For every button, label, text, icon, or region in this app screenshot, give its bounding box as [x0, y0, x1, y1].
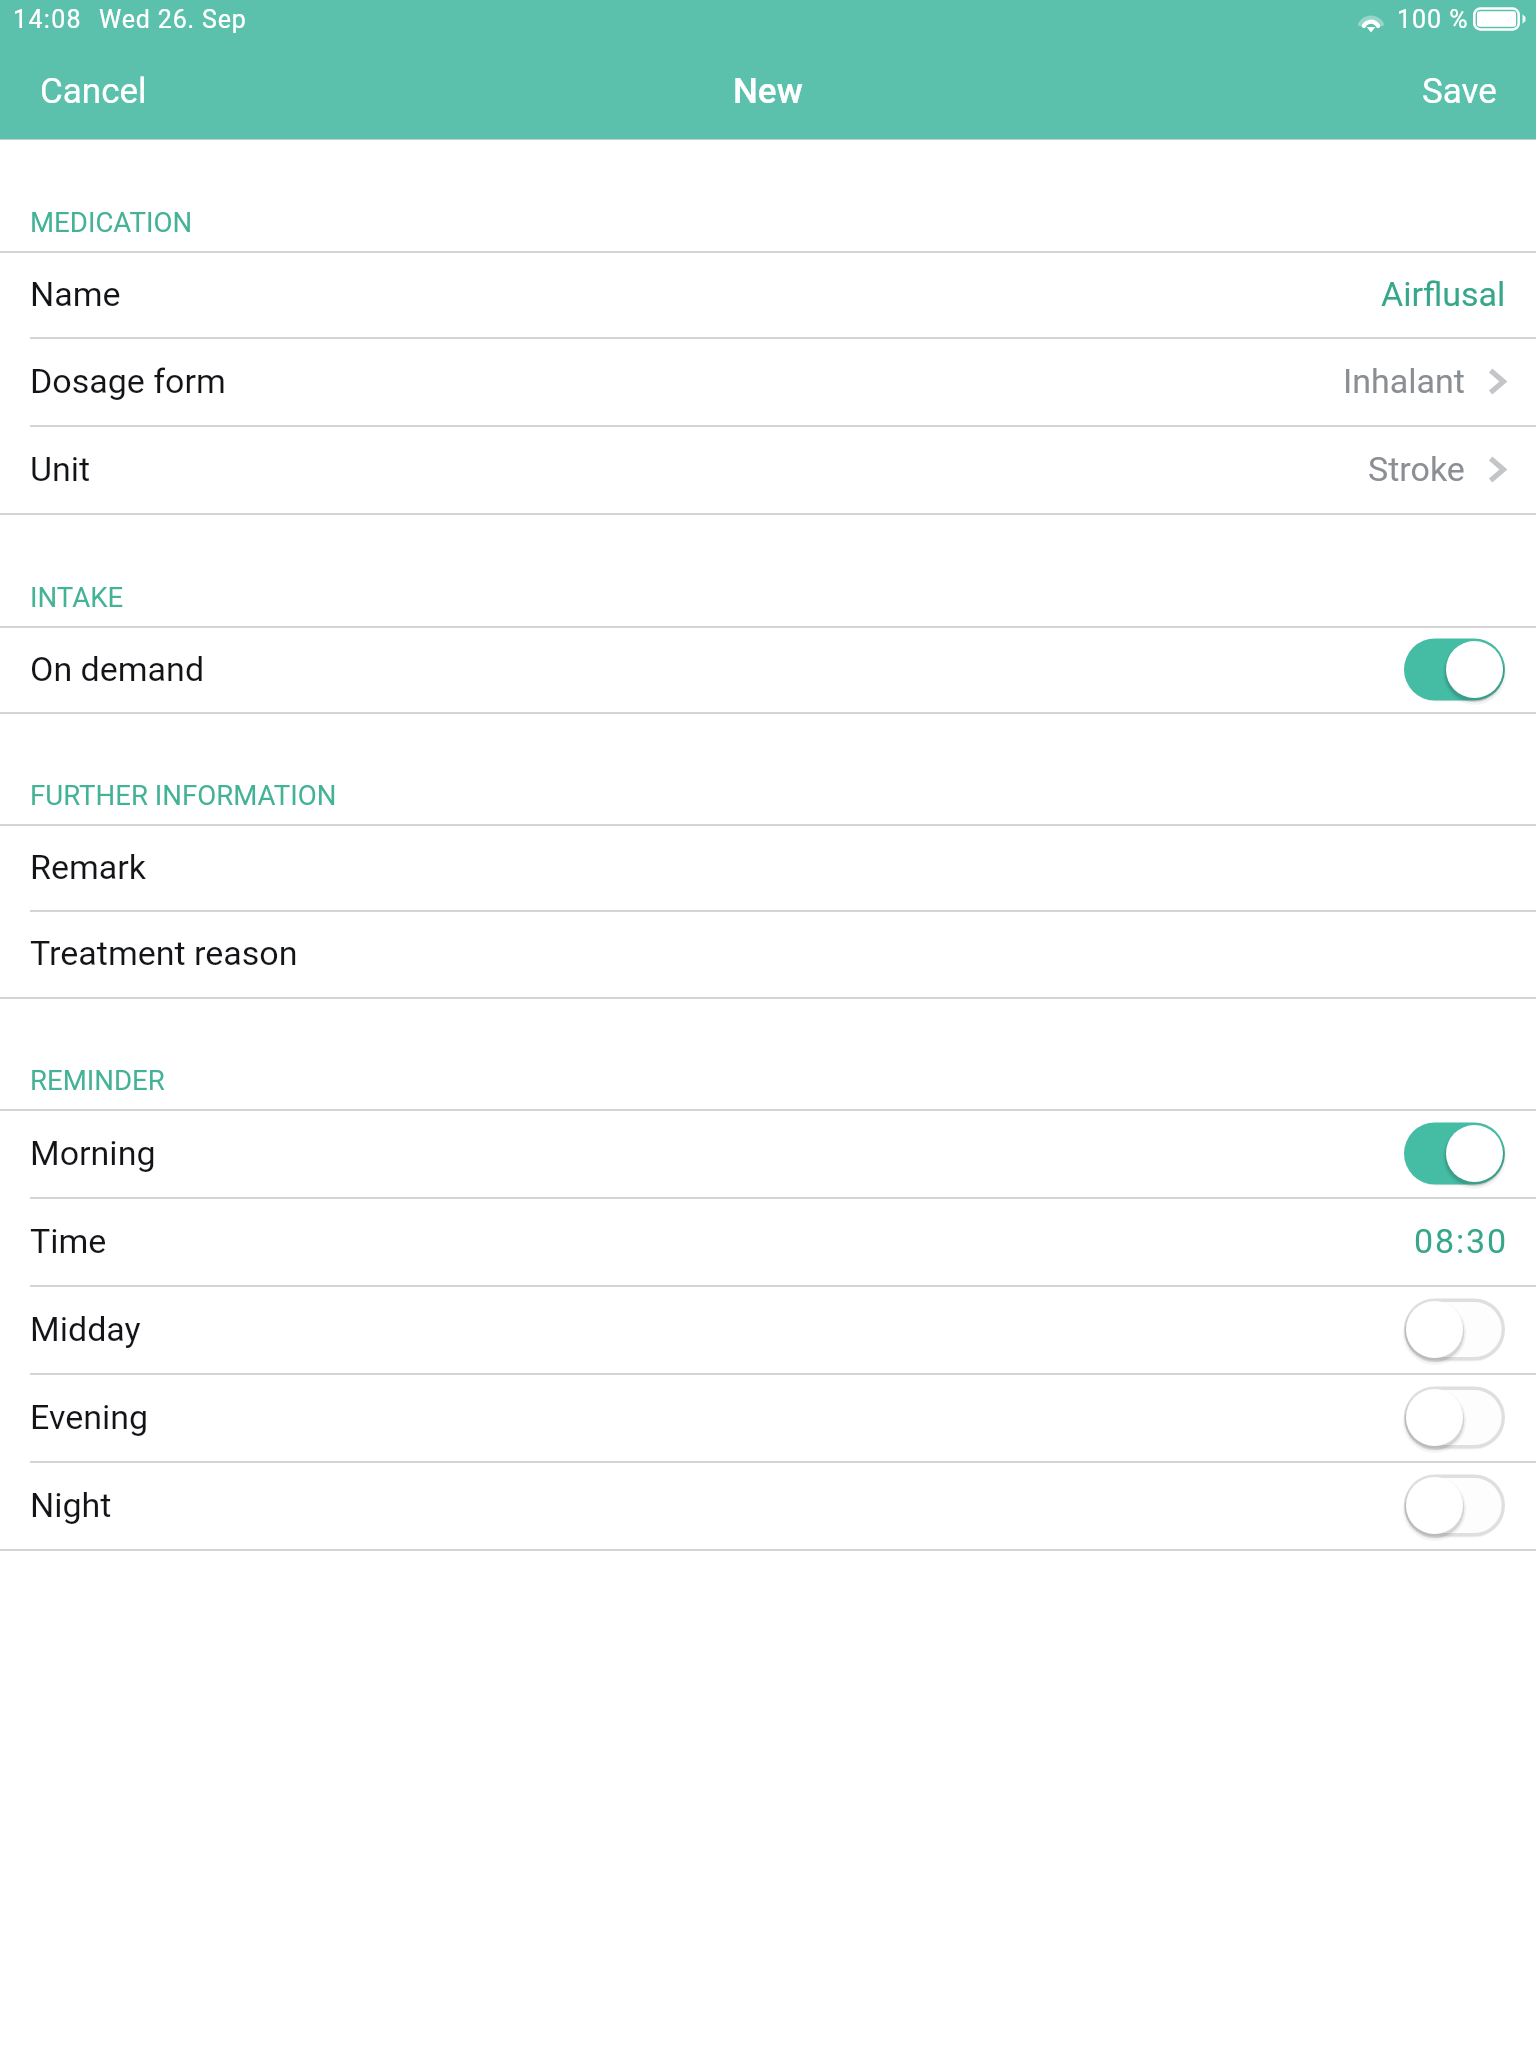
staticText: Stroke	[1368, 449, 1465, 489]
staticText: Morning	[30, 1133, 156, 1173]
staticText: Dosage form	[30, 361, 226, 401]
staticText: 14:08	[13, 5, 83, 34]
button[interactable]: Save	[1383, 55, 1536, 128]
staticText: Cancel	[40, 71, 147, 112]
staticText: FURTHER INFORMATION	[30, 779, 337, 811]
staticText: Save	[1422, 71, 1497, 112]
staticText: New	[733, 71, 803, 112]
button[interactable]: Dosage form	[0, 338, 1536, 425]
staticText: Airflusal	[1381, 274, 1506, 314]
staticText: 100 %	[1397, 5, 1469, 34]
staticText: INTAKE	[30, 581, 124, 613]
staticText: On demand	[30, 649, 205, 689]
button[interactable]: Morning	[0, 1110, 1536, 1197]
button[interactable]: Evening	[0, 1374, 1536, 1461]
button[interactable]: Unit	[0, 426, 1536, 513]
staticText: REMINDER	[30, 1064, 165, 1096]
button[interactable]: On demand	[0, 627, 1536, 712]
staticText: Time	[30, 1221, 107, 1261]
staticText: Midday	[30, 1309, 141, 1349]
staticText: MEDICATION	[30, 206, 193, 238]
staticText: Treatment reason	[30, 933, 298, 973]
button[interactable]: Remark	[0, 825, 1536, 910]
button[interactable]: Name	[0, 252, 1536, 337]
staticText: Remark	[30, 847, 147, 887]
staticText: Name	[30, 274, 121, 314]
other: Battery 100 percent	[1473, 7, 1526, 31]
staticText: Inhalant	[1343, 361, 1465, 401]
staticText: 08:30	[1414, 1221, 1508, 1261]
staticText: Wed 26. Sep	[99, 5, 247, 34]
button[interactable]: Cancel	[0, 55, 189, 128]
button[interactable]: Treatment reason	[0, 911, 1536, 997]
staticText: Evening	[30, 1397, 149, 1437]
button[interactable]: Night	[0, 1462, 1536, 1549]
staticText: Night	[30, 1485, 112, 1525]
button[interactable]: Midday	[0, 1286, 1536, 1373]
other: Wi-Fi	[1357, 7, 1385, 31]
button[interactable]: Time	[0, 1198, 1536, 1285]
staticText: Unit	[30, 449, 91, 489]
